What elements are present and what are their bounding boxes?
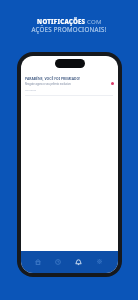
staticText: AÇÕES PROMOCIONAIS!	[31, 25, 107, 33]
button[interactable]: Home	[32, 251, 43, 273]
button[interactable]: Notifications	[73, 251, 84, 273]
button[interactable]: Settings	[94, 251, 105, 273]
button[interactable]: PARABÉNS, VOCÊ FOI PREMIADO!	[21, 76, 118, 96]
staticText: Ver oferta	[25, 88, 37, 91]
button[interactable]: History	[52, 251, 63, 273]
staticText: NOTIFICAÇÕES COM	[37, 17, 102, 25]
staticText: Resgate agora o seu prêmio exclusivo	[25, 82, 71, 86]
staticText: PARABÉNS, VOCÊ FOI PREMIADO!	[25, 76, 81, 80]
